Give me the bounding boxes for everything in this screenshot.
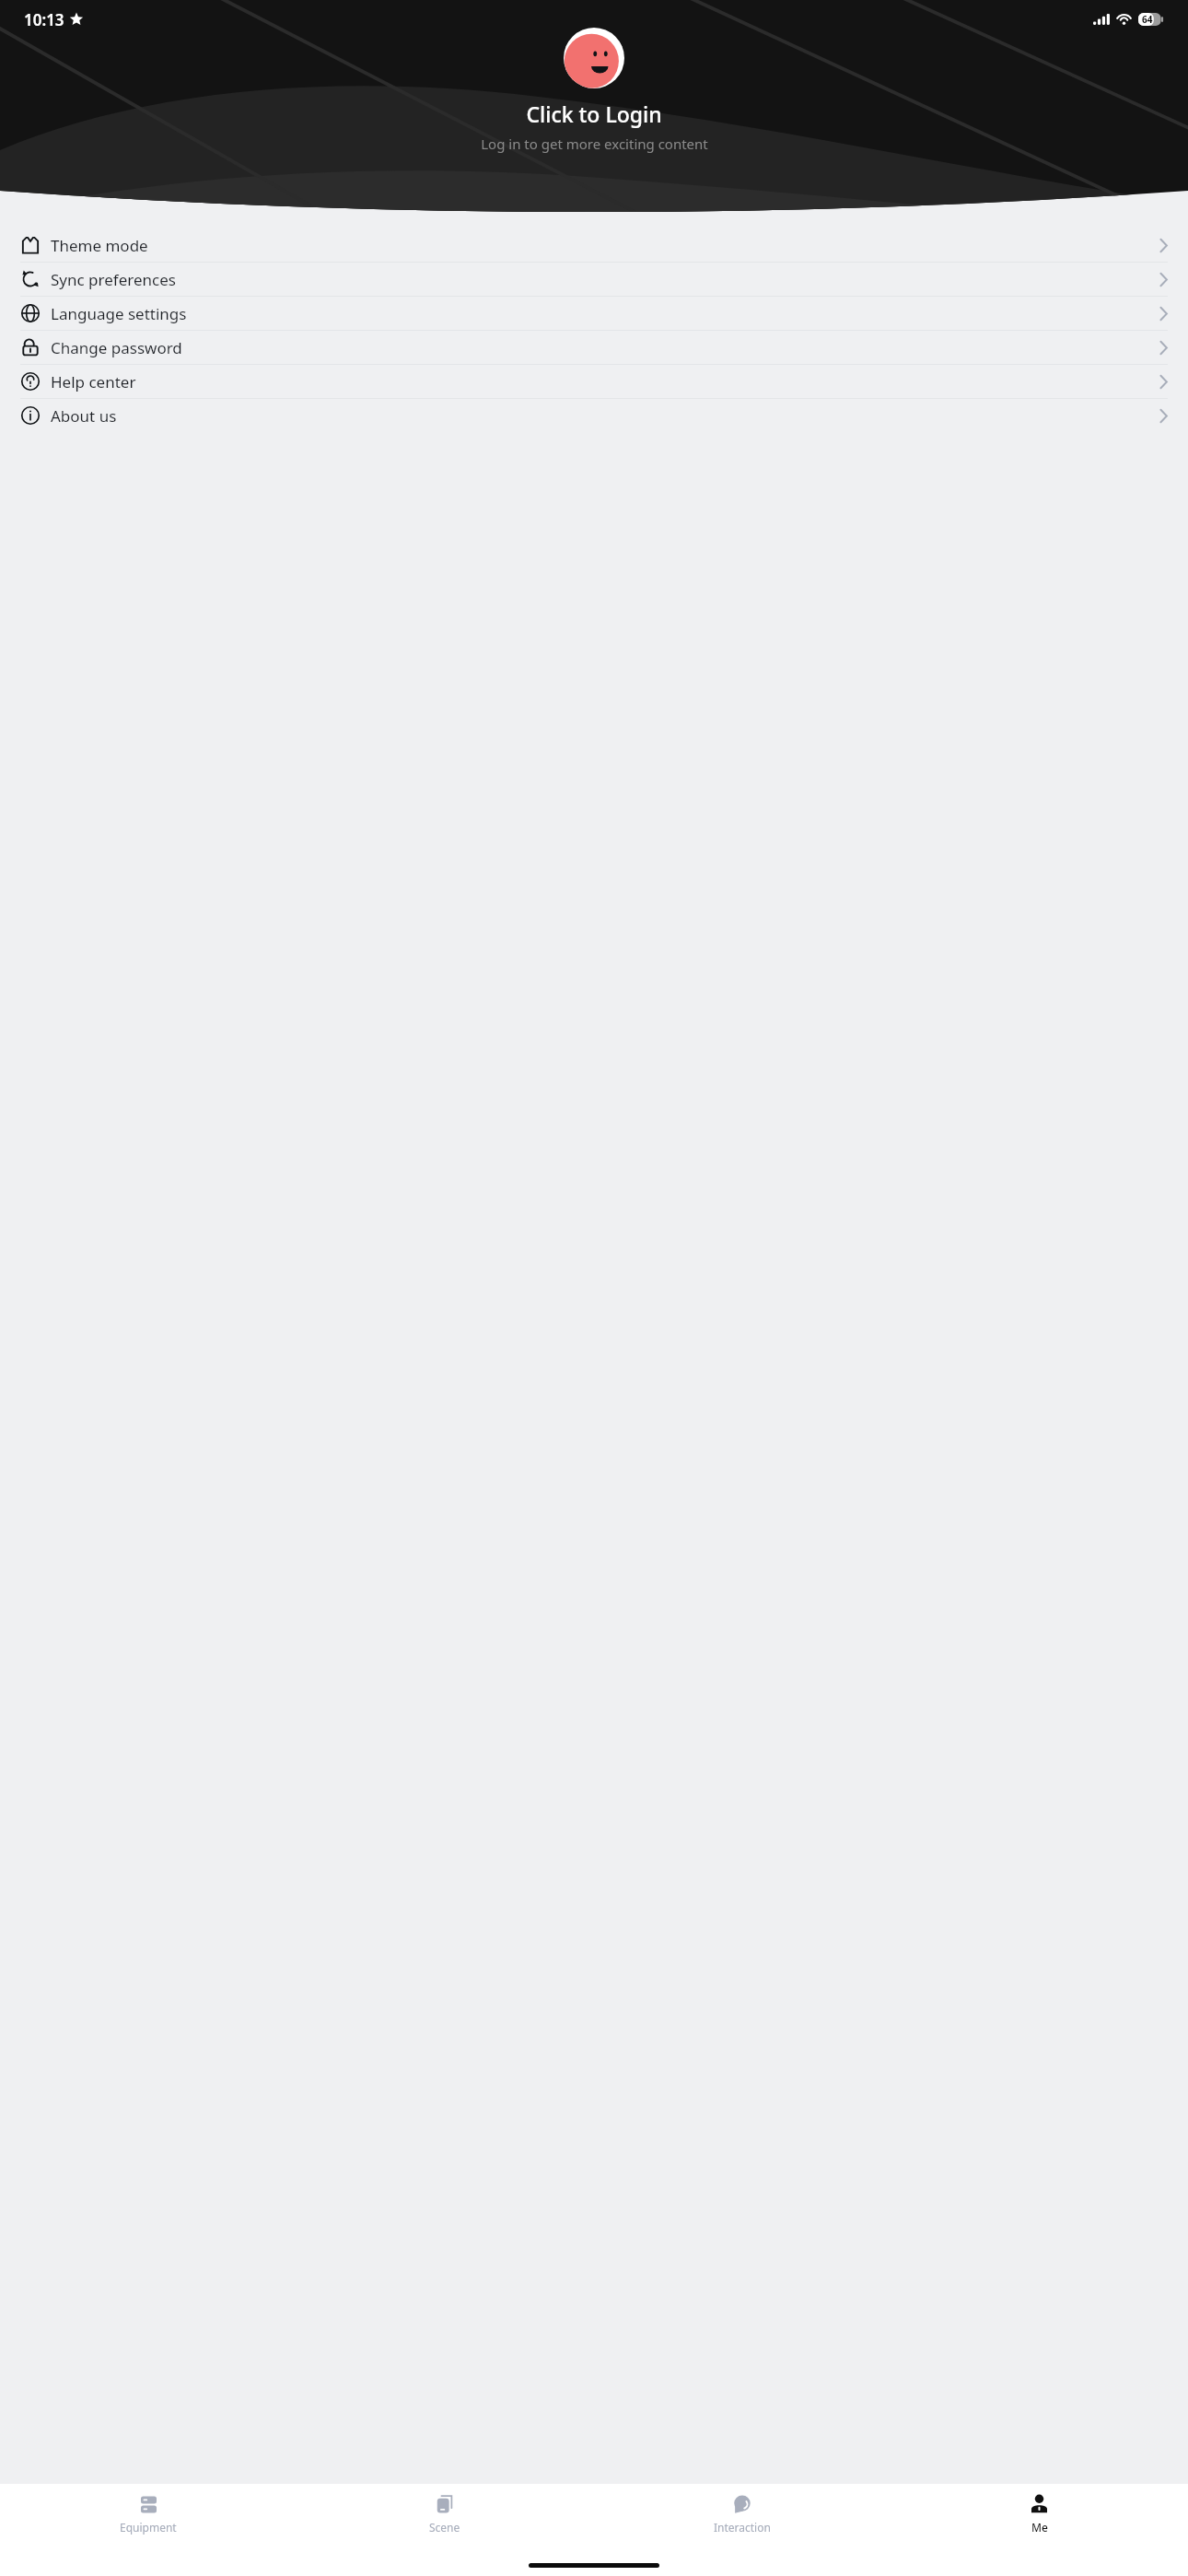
button[interactable]: Language settings (0, 297, 1188, 330)
staticText: Me (1031, 2520, 1048, 2535)
button[interactable]: Equipment (0, 2484, 297, 2545)
button[interactable]: Scene (297, 2484, 593, 2545)
button[interactable]: Click to Login (526, 100, 662, 128)
button[interactable]: About us (0, 399, 1188, 432)
button[interactable]: Help center (0, 365, 1188, 398)
button[interactable]: Sync preferences (0, 263, 1188, 296)
staticText: Help center (51, 371, 136, 392)
staticText: 64 (1142, 13, 1153, 26)
staticText: Equipment (120, 2520, 177, 2535)
staticText: Click to Login (526, 100, 662, 128)
button[interactable]: Change password (0, 331, 1188, 364)
staticText: 10:13 (24, 9, 64, 30)
staticText: Sync preferences (51, 269, 176, 290)
button[interactable]: Profile avatar (564, 28, 624, 88)
staticText: Scene (429, 2520, 460, 2535)
staticText: Language settings (51, 303, 187, 324)
staticText: Change password (51, 337, 182, 358)
staticText: Interaction (714, 2520, 771, 2535)
staticText: Theme mode (51, 235, 148, 256)
staticText: About us (51, 405, 117, 427)
button[interactable]: Theme mode (0, 228, 1188, 262)
button[interactable]: Me (891, 2484, 1188, 2545)
staticText: Log in to get more exciting content (481, 135, 708, 153)
button[interactable]: Interaction (593, 2484, 891, 2545)
